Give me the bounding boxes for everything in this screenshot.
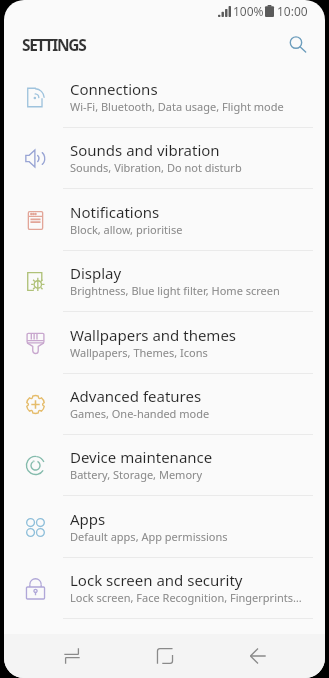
staticText: Wallpapers and themes (70, 325, 237, 345)
button[interactable]: Sounds and vibration (4, 128, 325, 189)
button[interactable]: Display (4, 251, 325, 312)
button[interactable]: Home (118, 634, 211, 678)
staticText: Wallpapers, Themes, Icons (70, 345, 208, 360)
staticText: Notifications (70, 202, 160, 222)
staticText: Battery, Storage, Memory (70, 467, 203, 482)
staticText: Default apps, App permissions (70, 529, 228, 544)
button[interactable]: Recent apps (25, 634, 118, 678)
button[interactable]: Lock screen and security (4, 558, 325, 619)
staticText: Lock screen and security (70, 570, 243, 590)
button[interactable]: Notifications (4, 190, 325, 251)
staticText: Sounds and vibration (70, 140, 220, 160)
staticText: Block, allow, prioritise (70, 222, 183, 237)
button[interactable]: Advanced features (4, 374, 325, 435)
staticText: Apps (70, 509, 106, 529)
button[interactable]: Search (282, 29, 312, 59)
staticText: Games, One-handed mode (70, 406, 210, 421)
staticText: Advanced features (70, 386, 202, 406)
staticText: Wi-Fi, Bluetooth, Data usage, Flight mod… (70, 99, 284, 114)
staticText: Device maintenance (70, 447, 213, 467)
button[interactable]: Wallpapers and themes (4, 313, 325, 374)
button[interactable]: Apps (4, 497, 325, 558)
staticText: Display (70, 263, 122, 283)
staticText: 100% (233, 3, 264, 19)
staticText: 10:00 (277, 3, 308, 19)
button[interactable]: Connections (4, 67, 325, 128)
staticText: Brightness, Blue light filter, Home scre… (70, 283, 280, 298)
button[interactable]: Device maintenance (4, 435, 325, 496)
staticText: Lock screen, Face Recognition, Fingerpri… (70, 590, 302, 605)
button[interactable]: Back (211, 634, 304, 678)
staticText: Connections (70, 79, 158, 99)
staticText: Sounds, Vibration, Do not disturb (70, 160, 242, 175)
staticText: SETTINGS (22, 34, 86, 55)
